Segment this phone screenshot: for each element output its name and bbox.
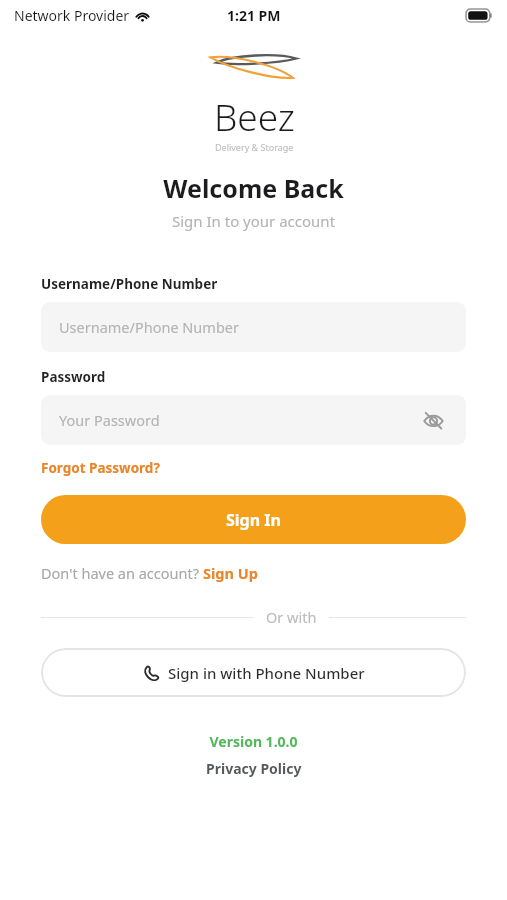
button[interactable]: Sign In: [41, 495, 466, 544]
staticText: Delivery & Storage: [215, 141, 294, 153]
staticText: Privacy Policy: [206, 759, 302, 778]
staticText: Beez: [214, 91, 295, 141]
button[interactable]: Your Password: [41, 395, 466, 445]
staticText: Sign In: [226, 509, 281, 531]
staticText: Version 1.0.0: [0, 732, 507, 751]
button[interactable]: Privacy Policy: [206, 759, 302, 778]
button[interactable]: Sign in with Phone Number: [41, 648, 466, 697]
staticText: Or with: [266, 607, 317, 627]
staticText: Don't have an account?: [41, 563, 203, 583]
staticText: Username/Phone Number: [41, 275, 218, 293]
staticText: Your Password: [59, 410, 160, 430]
button[interactable]: Show password: [418, 405, 448, 435]
staticText: Sign In to your account: [0, 211, 507, 231]
button[interactable]: Forgot Password?: [41, 459, 160, 477]
staticText: 1:21 PM: [227, 6, 281, 25]
staticText: Password: [41, 368, 106, 386]
staticText: Sign Up: [203, 563, 258, 583]
staticText: Username/Phone Number: [59, 317, 239, 337]
button[interactable]: Username/Phone Number: [41, 302, 466, 352]
staticText: Forgot Password?: [41, 459, 160, 477]
staticText: Network Provider: [14, 6, 130, 25]
button[interactable]: Sign Up: [203, 563, 258, 583]
staticText: Sign in with Phone Number: [168, 663, 365, 683]
staticText: Welcome Back: [0, 171, 507, 205]
